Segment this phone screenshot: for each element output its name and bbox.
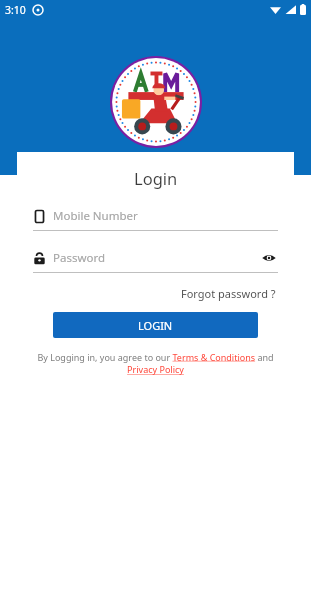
staticText: 3:10 [5,3,26,17]
staticText: LOGIN [138,318,173,333]
button[interactable]: LOGIN [53,312,258,338]
staticText: Login [134,167,178,189]
staticText: Forgot password ? [181,286,276,301]
staticText: Password [53,250,260,266]
button[interactable]: Forgot password ? [179,284,278,303]
button[interactable]: By Logging in, you agree to our Terms & … [31,351,280,376]
staticText: By Logging in, you agree to our Terms & … [31,351,280,376]
staticText: Mobile Number [53,208,278,224]
button[interactable]: Show password [260,249,278,267]
